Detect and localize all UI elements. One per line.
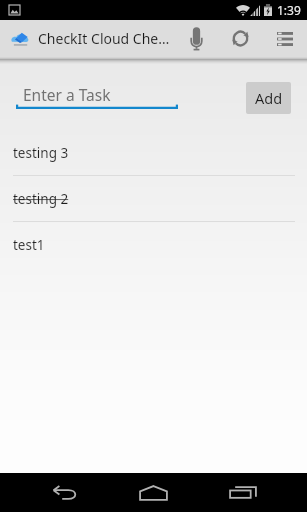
staticText: Enter a Task (23, 84, 111, 105)
button[interactable]: testing 2 (0, 176, 307, 222)
staticText: testing 2 (13, 190, 69, 208)
button[interactable]: Recent apps (198, 473, 287, 512)
button[interactable]: Voice input (174, 20, 218, 57)
button[interactable]: Enter a Task (16, 81, 178, 109)
button[interactable]: testing 3 (0, 130, 307, 176)
staticText: testing 3 (13, 144, 69, 162)
staticText: test1 (13, 236, 45, 254)
staticText: 1:39 (277, 2, 301, 18)
button[interactable]: More options (262, 20, 307, 57)
button[interactable]: test1 (0, 222, 307, 268)
button[interactable]: Home (109, 473, 198, 512)
staticText: CheckIt Cloud Che… (38, 29, 170, 48)
staticText: Add (255, 88, 283, 108)
button[interactable]: Back (20, 473, 109, 512)
button[interactable]: Add (246, 82, 291, 114)
button[interactable]: Refresh (218, 20, 262, 57)
